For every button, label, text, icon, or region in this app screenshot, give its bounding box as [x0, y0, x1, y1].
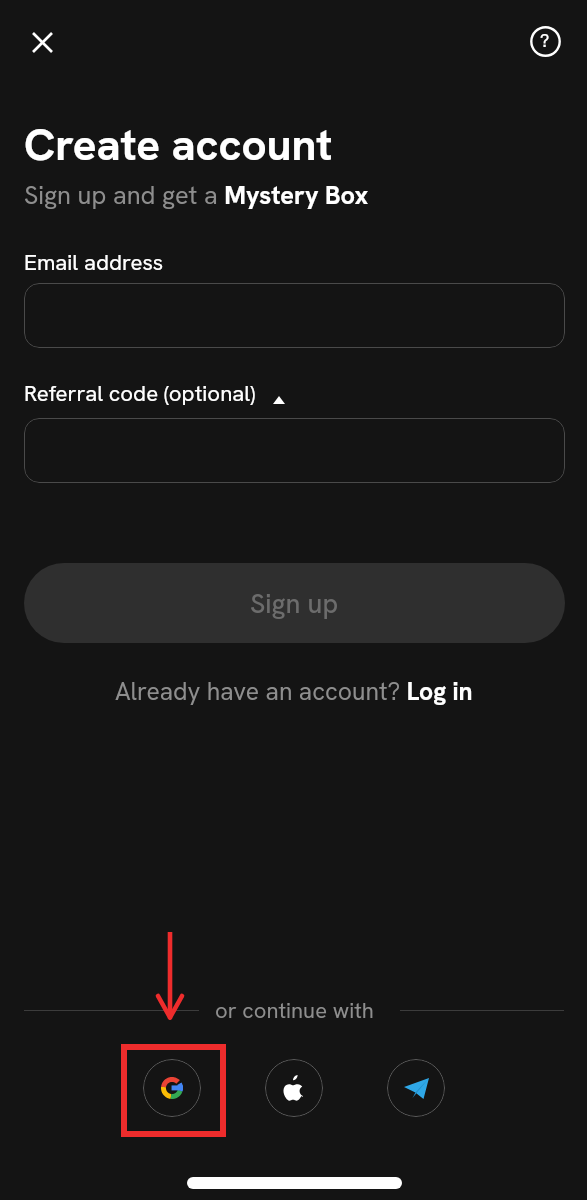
button[interactable]: Sign up: [24, 563, 565, 643]
button[interactable]: Close: [19, 19, 65, 65]
button[interactable]: Sign in with Google: [143, 1059, 201, 1117]
staticText: Referral code (optional): [24, 379, 256, 408]
staticText: ?: [540, 29, 550, 52]
staticText: or continue with: [215, 996, 374, 1025]
staticText: Sign up: [250, 586, 339, 621]
button[interactable]: [24, 283, 565, 348]
button[interactable]: Sign in with Apple: [265, 1059, 323, 1117]
staticText: Create account: [24, 116, 333, 173]
button[interactable]: Sign in with Telegram: [387, 1059, 445, 1117]
staticText: Email address: [24, 248, 164, 277]
button[interactable]: Collapse referral code: [267, 388, 291, 412]
button[interactable]: Help: [523, 19, 567, 63]
staticText: Sign up and get a Mystery Box: [24, 179, 369, 212]
button[interactable]: [24, 418, 565, 483]
button[interactable]: Already have an account? Log in: [115, 675, 473, 707]
